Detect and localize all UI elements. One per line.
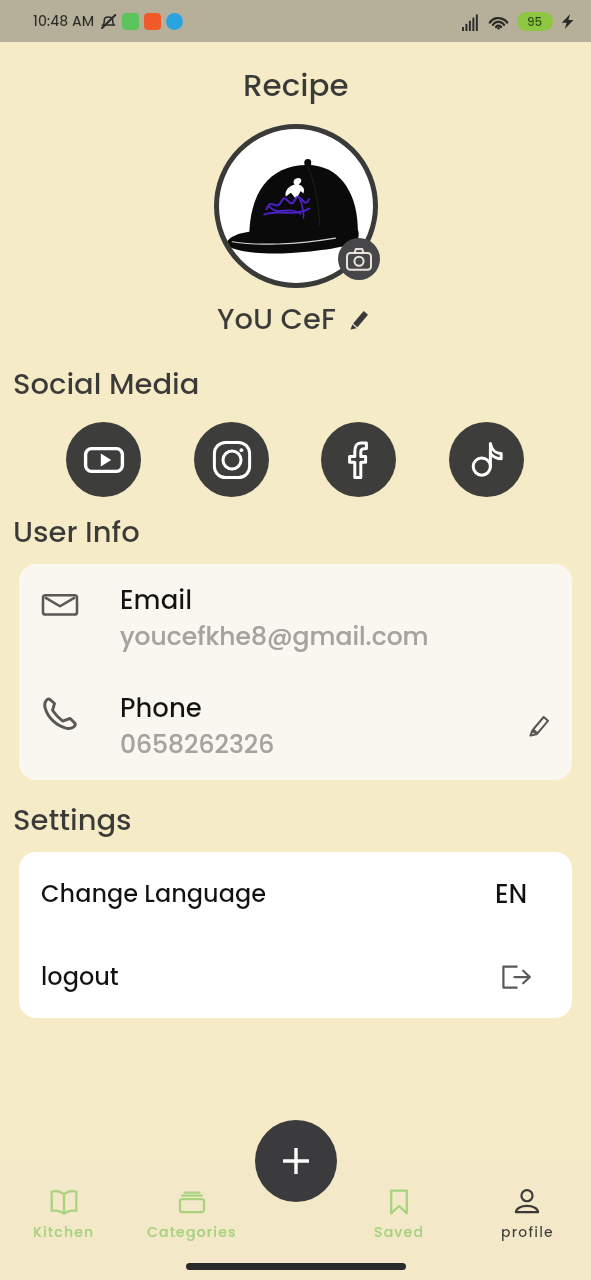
staticText: Social Media bbox=[13, 364, 200, 405]
button[interactable]: Change Language bbox=[19, 852, 572, 936]
staticText: User Info bbox=[13, 512, 140, 553]
button[interactable]: Edit phone bbox=[524, 711, 554, 741]
button[interactable]: YouTube bbox=[66, 422, 141, 497]
button[interactable]: Categories bbox=[128, 1187, 256, 1242]
button[interactable]: Kitchen bbox=[0, 1187, 128, 1242]
staticText: 10:48 AM bbox=[33, 11, 95, 31]
staticText: 95 bbox=[527, 13, 543, 30]
button[interactable]: Change profile photo bbox=[338, 238, 380, 280]
button[interactable]: Add recipe bbox=[255, 1120, 337, 1202]
staticText: Recipe bbox=[243, 63, 349, 106]
staticText: Kitchen bbox=[33, 1222, 95, 1242]
staticText: Settings bbox=[13, 800, 132, 841]
staticText: logout bbox=[41, 960, 119, 994]
staticText: youcefkhe8@gmail.com bbox=[120, 619, 429, 654]
staticText: Phone bbox=[120, 690, 202, 726]
staticText: EN bbox=[495, 876, 528, 912]
staticText: 0658262326 bbox=[120, 727, 275, 762]
button[interactable]: Edit name bbox=[344, 305, 374, 335]
staticText: Categories bbox=[147, 1222, 237, 1242]
staticText: YoU CeF bbox=[217, 299, 336, 340]
button[interactable]: Facebook bbox=[321, 422, 396, 497]
button[interactable]: Phone bbox=[19, 672, 572, 780]
staticText: Email bbox=[120, 582, 192, 618]
button[interactable]: TikTok bbox=[449, 422, 524, 497]
staticText: Saved bbox=[374, 1222, 425, 1242]
button[interactable]: logout bbox=[19, 936, 572, 1018]
button[interactable]: Instagram bbox=[194, 422, 269, 497]
staticText: profile bbox=[501, 1222, 554, 1242]
staticText: Change Language bbox=[41, 877, 266, 911]
button[interactable] bbox=[214, 124, 378, 288]
button[interactable]: profile bbox=[463, 1187, 591, 1242]
button[interactable]: Email bbox=[19, 564, 572, 672]
button[interactable]: Saved bbox=[335, 1187, 463, 1242]
